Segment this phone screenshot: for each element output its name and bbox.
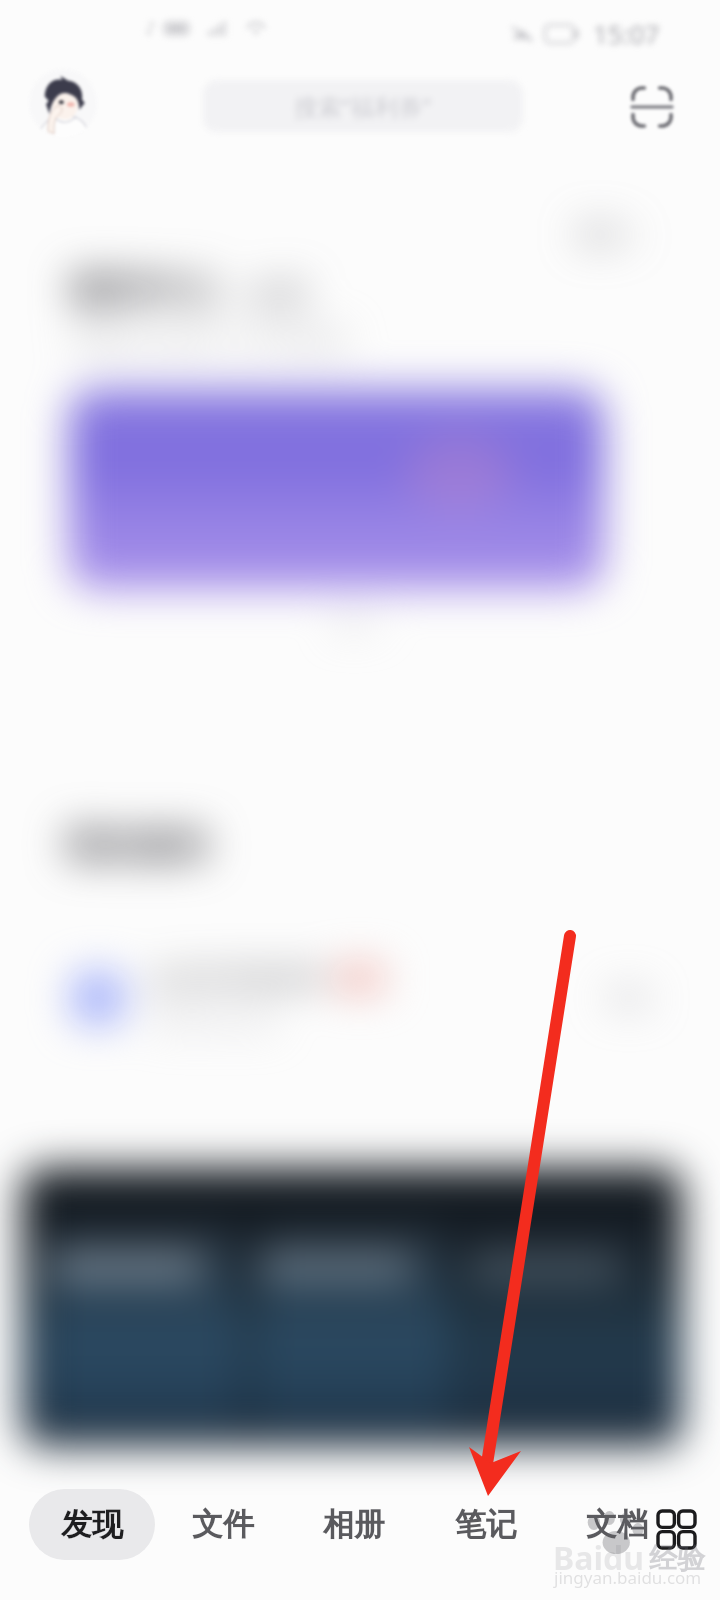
staticText: Baidu: [553, 1536, 645, 1580]
button[interactable]: 笔记: [443, 1489, 529, 1560]
staticText: jingyan.baidu.com: [554, 1566, 702, 1589]
button[interactable]: 更多 ›: [572, 212, 645, 254]
staticText: 相册: [323, 1505, 385, 1544]
button[interactable]: 文档: [574, 1489, 660, 1560]
button[interactable]: 会员专享福利券: [72, 956, 652, 1040]
button[interactable]: 相册: [311, 1489, 397, 1560]
staticText: 发现: [61, 1505, 123, 1544]
button[interactable]: [69, 389, 604, 589]
button[interactable]: 发现: [29, 1489, 155, 1560]
button[interactable]: Scan QR code: [618, 73, 686, 141]
staticText: 15:07: [593, 16, 660, 51]
staticText: 文件: [192, 1505, 254, 1544]
staticText: ♪: [145, 18, 156, 38]
button[interactable]: 搜索“福利券”: [203, 80, 523, 132]
staticText: 笔记: [455, 1505, 517, 1544]
staticText: 福利中心: [68, 266, 220, 314]
button[interactable]: All tabs: [648, 1501, 704, 1557]
button[interactable]: Profile: [29, 69, 97, 137]
staticText: 搜索“福利券”: [294, 90, 432, 123]
button[interactable]: 文件: [180, 1489, 266, 1560]
staticText: 我的服务: [64, 822, 212, 869]
button[interactable]: [22, 1168, 682, 1446]
staticText: 经验: [649, 1541, 705, 1576]
staticText: 文档: [586, 1505, 648, 1544]
staticText: 领福利·送好礼·天天有惊喜: [72, 322, 349, 355]
